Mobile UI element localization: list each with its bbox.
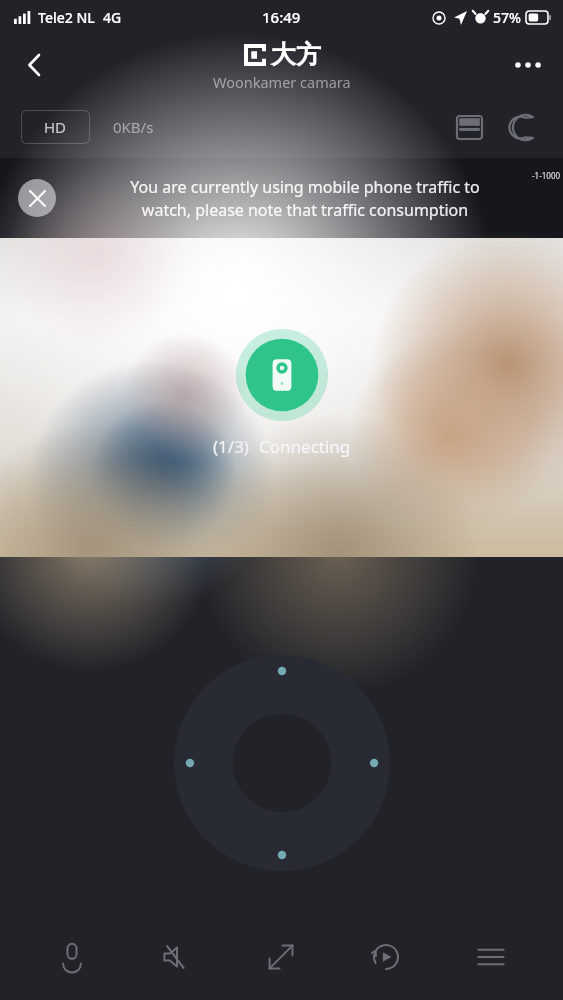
button[interactable]: Mute [144,924,210,990]
button[interactable]: Menu [458,924,524,990]
staticText: Tele2 NL [38,8,95,27]
button[interactable]: More options [501,38,555,92]
staticText: 大方 [271,39,321,70]
staticText: You are currently using mobile phone tra… [130,176,480,221]
button[interactable]: HD [21,110,90,144]
button[interactable]: 大方 [213,39,351,92]
staticText: 16:49 [262,7,301,27]
button[interactable]: Close notice [18,179,56,217]
button[interactable]: Split screen [447,105,491,149]
staticText: Woonkamer camara [213,72,351,92]
staticText: (1/3) [213,435,249,458]
staticText: HD [44,117,67,137]
button[interactable]: Pan and tilt control [174,655,390,871]
button[interactable]: Fullscreen [248,924,314,990]
button[interactable]: Playback [353,924,419,990]
staticText: -1-1000 [532,170,561,181]
staticText: 0KB/s [113,117,154,137]
button[interactable]: Back [8,38,62,92]
staticText: Connecting [259,435,351,458]
button[interactable]: Night mode [501,105,545,149]
staticText: 57% [493,8,521,27]
staticText: 4G [103,8,122,27]
button[interactable]: Talk [39,924,105,990]
